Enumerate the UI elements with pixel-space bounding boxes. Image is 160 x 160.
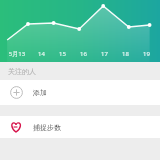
button[interactable]: Heart rate steps [0,116,160,138]
staticText: 17 [94,50,115,58]
staticText: 14 [31,50,52,58]
staticText: 15 [52,50,73,58]
staticText: 19 [136,50,157,58]
staticText: 捕捉步数 [33,123,61,132]
staticText: 添加 [33,88,47,97]
staticText: 5月13 [3,50,31,58]
staticText: 关注的人 [8,67,36,76]
other: Heart rate steps [10,121,22,133]
staticText: 18 [115,50,136,58]
button[interactable]: Add [0,80,160,105]
other: Add [10,86,23,99]
staticText: 16 [73,50,94,58]
